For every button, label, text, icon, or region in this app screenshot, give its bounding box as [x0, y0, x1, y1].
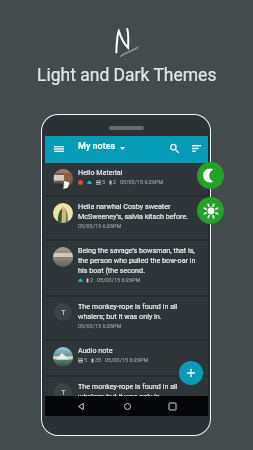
staticText: T [61, 308, 66, 317]
staticText: 05/03/15 6:26PM [105, 357, 149, 363]
button[interactable]: T [45, 297, 208, 339]
staticText: whalers; but it was only in. [78, 312, 162, 320]
staticText: whalers; but it was only in. [78, 392, 162, 400]
staticText: Audio note [78, 346, 113, 354]
button[interactable]: Sort [188, 140, 205, 157]
staticText: 5 [102, 179, 106, 185]
staticText: Being the savage's bowsman, that is, [78, 246, 195, 254]
staticText: 2 [113, 179, 117, 185]
staticText: Hella narwhal Cosby sweater [78, 202, 171, 210]
staticText: the person who pulled the bow-oar in [78, 256, 196, 264]
staticText: 05/03/15 6:26PM [120, 179, 164, 185]
staticText: My notes [78, 141, 116, 152]
button[interactable]: Search [166, 140, 183, 157]
button[interactable]: Hella narwhal Cosby sweater [45, 197, 208, 239]
staticText: McSweeney's, salvia kitsch before. [78, 212, 189, 220]
staticText: 05/03/15 6:26PM [78, 323, 122, 329]
staticText: The monkey-rope is found in all [78, 382, 178, 390]
staticText: 35 [95, 357, 102, 363]
staticText: Light and Dark Themes [37, 65, 217, 86]
button[interactable]: Back [72, 397, 90, 415]
staticText: 05/03/15 6:26PM [78, 223, 122, 229]
button[interactable]: Open navigation drawer [50, 140, 67, 157]
button[interactable]: Audio note [45, 341, 208, 375]
staticText: 5 [84, 357, 88, 363]
button[interactable]: Recent apps [163, 397, 181, 415]
button[interactable]: Home [118, 397, 136, 415]
button[interactable]: Hello Material [45, 163, 208, 195]
staticText: T [61, 388, 66, 397]
button[interactable]: Add note [179, 361, 203, 385]
staticText: 2 [90, 277, 94, 283]
staticText: 05/03/15 6:26PM [97, 277, 141, 283]
button[interactable]: Dark theme [197, 162, 224, 189]
button[interactable]: Being the savage's bowsman, that is, [45, 241, 208, 295]
staticText: his boat (the second. [78, 266, 146, 274]
button[interactable]: T [45, 377, 208, 396]
staticText: The monkey-rope is found in all [78, 302, 178, 310]
staticText: Hello Material [78, 168, 123, 176]
button[interactable]: Light theme [197, 197, 224, 224]
